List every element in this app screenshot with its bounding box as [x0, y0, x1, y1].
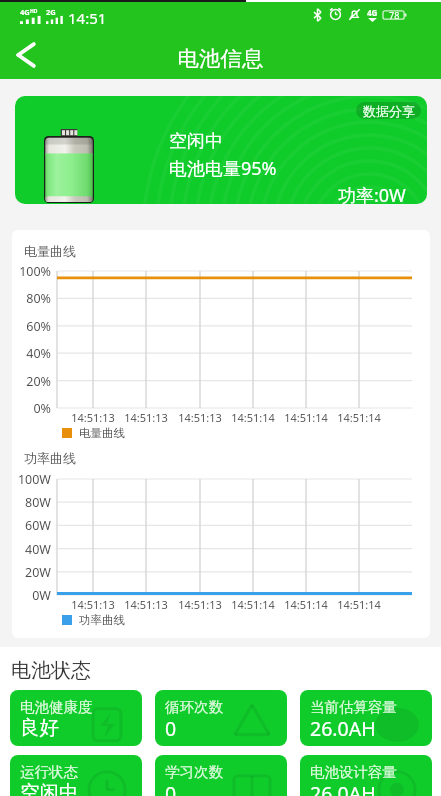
staticText: 40%	[0, 345, 51, 362]
staticText: 空闲中	[20, 780, 79, 796]
staticText: 60W	[0, 517, 51, 534]
staticText: 14:51:13	[116, 410, 176, 425]
button[interactable]: 数据分享	[15, 96, 427, 204]
staticText: 100W	[0, 471, 51, 488]
staticText: 当前估算容量	[310, 698, 397, 716]
staticText: 电量曲线	[79, 426, 125, 440]
staticText: 2G	[46, 7, 56, 17]
button[interactable]: 学习次数	[155, 755, 287, 796]
staticText: 良好	[20, 715, 59, 740]
staticText: 电池设计容量	[310, 763, 397, 781]
staticText: 4G	[20, 7, 30, 17]
staticText: 80W	[0, 494, 51, 511]
staticText: 电池健康度	[20, 698, 93, 716]
staticText: 20%	[0, 373, 51, 390]
staticText: 功率曲线	[24, 450, 76, 466]
staticText: 14:51:14	[276, 410, 336, 425]
staticText: 20W	[0, 564, 51, 581]
staticText: 0W	[0, 587, 51, 604]
staticText: 电池信息	[0, 45, 441, 72]
staticText: 60%	[0, 318, 51, 335]
staticText: 0	[165, 780, 177, 796]
button[interactable]: 电池设计容量	[300, 755, 432, 796]
staticText: 循环次数	[165, 698, 223, 716]
button[interactable]: 电池健康度	[10, 690, 142, 746]
staticText: 14:51:14	[329, 410, 389, 425]
staticText: 14:51:13	[170, 410, 230, 425]
staticText: 空闲中	[169, 130, 223, 153]
staticText: 4G	[367, 7, 378, 18]
staticText: 电量曲线	[24, 243, 76, 259]
staticText: 学习次数	[165, 763, 223, 781]
button[interactable]: Back	[8, 37, 44, 73]
staticText: 40W	[0, 541, 51, 558]
staticText: 运行状态	[20, 763, 78, 781]
staticText: 14:51:14	[223, 597, 283, 612]
button[interactable]: 当前估算容量	[300, 690, 432, 746]
staticText: 0%	[0, 400, 51, 417]
staticText: 14:51:13	[63, 410, 123, 425]
staticText: 26.0AH	[310, 780, 376, 796]
staticText: 14:51:14	[276, 597, 336, 612]
staticText: 14:51:14	[223, 410, 283, 425]
staticText: 功率:0W	[338, 183, 406, 208]
staticText: 14:51:13	[63, 597, 123, 612]
staticText: HD	[30, 8, 38, 15]
staticText: 功率曲线	[79, 613, 125, 627]
button[interactable]: 运行状态	[10, 755, 142, 796]
staticText: 0	[165, 715, 177, 742]
staticText: 26.0AH	[310, 715, 376, 742]
staticText: 电池状态	[11, 658, 91, 683]
button[interactable]: 数据分享	[356, 102, 421, 119]
staticText: 14:51	[68, 8, 107, 28]
staticText: 78	[389, 9, 400, 21]
button[interactable]: 循环次数	[155, 690, 287, 746]
staticText: 14:51:14	[329, 597, 389, 612]
staticText: 电池电量95%	[169, 156, 277, 181]
staticText: 14:51:13	[116, 597, 176, 612]
staticText: 80%	[0, 290, 51, 307]
staticText: 数据分享	[363, 103, 415, 119]
staticText: 14:51:13	[170, 597, 230, 612]
staticText: 100%	[0, 263, 51, 280]
